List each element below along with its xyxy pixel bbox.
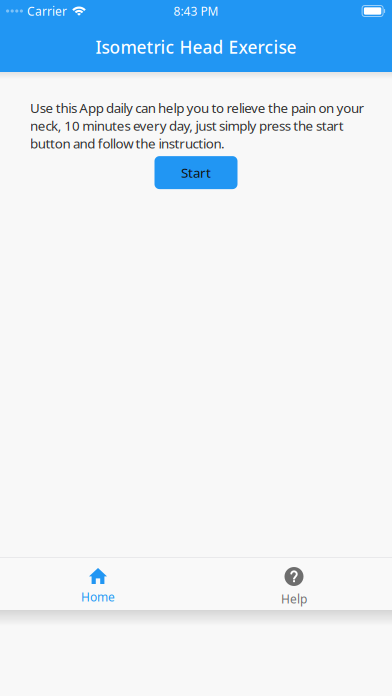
staticText: Carrier: [27, 3, 67, 19]
staticText: Isometric Head Exercise: [95, 35, 296, 58]
staticText: 8:43 PM: [173, 3, 218, 19]
staticText: Home: [81, 589, 115, 605]
button[interactable]: Help: [196, 557, 392, 610]
staticText: Help: [281, 591, 307, 607]
button[interactable]: Home: [0, 557, 196, 610]
staticText: Start: [181, 164, 211, 181]
staticText: Use this App daily can help you to relie…: [30, 99, 365, 152]
button[interactable]: Start: [154, 156, 237, 189]
